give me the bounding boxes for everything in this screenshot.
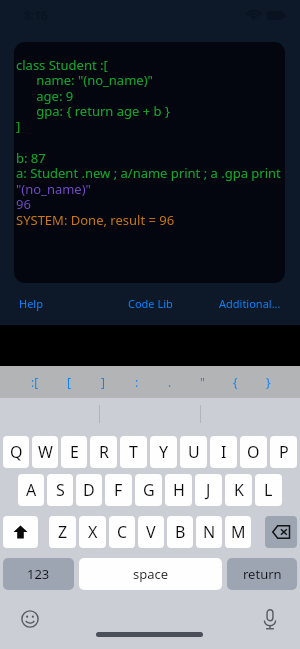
button[interactable]: { (219, 366, 252, 398)
staticText: O (247, 441, 260, 463)
button[interactable]: Additional... (194, 291, 281, 315)
staticText: J (206, 479, 211, 501)
staticText: b: 87 (16, 149, 46, 167)
staticText: Y (159, 441, 169, 463)
staticText: Code Lib (128, 296, 173, 311)
button[interactable]: F (105, 474, 132, 506)
button[interactable]: T (120, 436, 147, 468)
button[interactable]: J (195, 474, 222, 506)
staticText: T (129, 441, 138, 463)
staticText: Z (58, 521, 68, 543)
button[interactable]: D (76, 474, 102, 506)
staticText: name: "(no_name)" (16, 71, 153, 89)
staticText: a: Student .new ; a/name print ; a .gpa … (16, 164, 281, 182)
button[interactable]: Q (3, 436, 29, 468)
button[interactable]: R (90, 436, 117, 468)
staticText: I (221, 441, 227, 463)
staticText: F (114, 479, 123, 501)
staticText: P (279, 441, 289, 463)
staticText: age: 9 (16, 87, 74, 105)
button[interactable]: Help (19, 291, 107, 315)
button[interactable]: " (186, 366, 219, 398)
staticText: 123 (27, 565, 50, 583)
button[interactable]: Y (150, 436, 177, 468)
staticText: 96 (16, 195, 31, 213)
button[interactable]: Code Lib (107, 291, 194, 315)
button[interactable]: 123 (3, 558, 74, 590)
button[interactable]: } (252, 366, 285, 398)
staticText: Additional... (219, 296, 281, 311)
button[interactable]: X (79, 516, 106, 548)
staticText: ] (16, 117, 21, 135)
button[interactable]: O (240, 436, 267, 468)
button[interactable]: C (109, 516, 135, 548)
staticText: return (243, 565, 282, 583)
staticText: H (173, 479, 185, 501)
staticText: X (88, 521, 98, 543)
staticText: C (117, 521, 128, 543)
staticText: L (264, 479, 273, 501)
staticText: G (143, 479, 155, 501)
button[interactable]: M (225, 516, 251, 548)
button[interactable]: P (270, 436, 297, 468)
staticText: S (56, 479, 65, 501)
staticText: R (99, 441, 109, 463)
button[interactable]: space (79, 558, 222, 590)
button[interactable]: H (165, 474, 192, 506)
button[interactable]: A (18, 474, 44, 506)
staticText: class Student :[ (16, 56, 108, 74)
button[interactable]: Z (49, 516, 76, 548)
staticText: E (70, 441, 79, 463)
staticText: B (175, 521, 186, 543)
staticText: U (188, 441, 200, 463)
staticText: { (233, 374, 238, 390)
staticText: A (26, 479, 37, 501)
button[interactable]: N (196, 516, 222, 548)
staticText: "(no_name)" (16, 180, 91, 198)
button[interactable]: return (227, 558, 297, 590)
staticText: V (146, 521, 156, 543)
staticText: M (231, 521, 246, 543)
button[interactable]: [ (52, 366, 86, 398)
staticText: : (135, 374, 139, 390)
staticText: . (168, 374, 172, 390)
button[interactable]: Emoji keyboard (18, 607, 42, 631)
button[interactable]: S (47, 474, 73, 506)
button[interactable]: E (61, 436, 87, 468)
staticText: " (200, 374, 205, 390)
button[interactable]: V (138, 516, 164, 548)
button[interactable]: : (120, 366, 153, 398)
button[interactable]: . (153, 366, 186, 398)
staticText: :[ (31, 374, 39, 390)
button[interactable]: ] (86, 366, 120, 398)
button[interactable]: G (135, 474, 162, 506)
staticText: [ (67, 374, 71, 390)
button[interactable]: B (167, 516, 193, 548)
staticText: gpa: { return age + b } (16, 102, 170, 120)
button[interactable]: :[ (18, 366, 52, 398)
button[interactable]: U (180, 436, 207, 468)
button[interactable]: Backspace (265, 516, 297, 548)
button[interactable]: Shift (3, 516, 38, 548)
staticText: ] (101, 374, 105, 390)
staticText: K (234, 479, 244, 501)
staticText: } (266, 374, 271, 390)
button[interactable]: K (225, 474, 252, 506)
button[interactable]: I (210, 436, 237, 468)
staticText: SYSTEM: Done, result = 96 (16, 211, 175, 229)
button[interactable]: L (255, 474, 282, 506)
staticText: N (203, 521, 216, 543)
staticText: W (38, 441, 53, 463)
staticText: space (133, 565, 169, 583)
button[interactable]: W (32, 436, 58, 468)
button[interactable]: Dictation (258, 607, 282, 631)
staticText: Q (10, 441, 23, 463)
staticText: D (83, 479, 95, 501)
staticText: Help (19, 296, 43, 311)
